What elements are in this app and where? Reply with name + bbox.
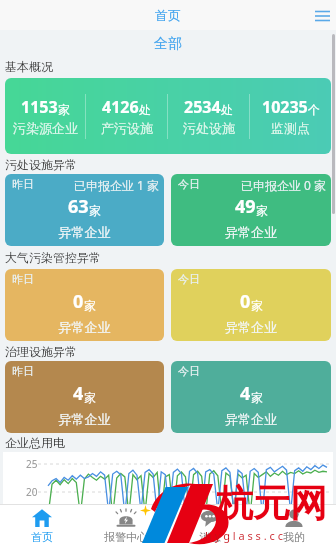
staticText: 企业总用电 (5, 435, 65, 450)
staticText: 首页 (155, 7, 181, 23)
button[interactable]: 昨日 (5, 269, 164, 341)
staticText: 杭元网 (216, 480, 327, 527)
button[interactable]: 今日 (171, 361, 331, 433)
button[interactable]: 报警中心 (84, 505, 168, 548)
staticText: 0 (73, 289, 84, 314)
staticText: 10235 (262, 96, 308, 118)
staticText: 25 (26, 457, 38, 471)
staticText: 1153 (21, 96, 58, 118)
staticText: 家 (84, 298, 96, 313)
staticText: 49 (235, 194, 256, 219)
staticText: 异常企业 (5, 411, 164, 427)
staticText: 异常企业 (171, 411, 331, 427)
button[interactable]: 消息 (168, 505, 252, 548)
staticText: 昨日 (12, 177, 34, 191)
staticText: 治理设施异常 (5, 344, 77, 359)
button[interactable]: 我的 (252, 505, 336, 548)
staticText: h y g l a s s . c c (205, 528, 283, 543)
staticText: 首页 (31, 530, 53, 544)
button[interactable]: 1153 (5, 78, 331, 154)
staticText: 家 (251, 390, 263, 405)
staticText: 昨日 (12, 364, 34, 378)
staticText: 异常企业 (5, 319, 164, 335)
staticText: 异常企业 (171, 224, 331, 240)
staticText: 今日 (178, 177, 200, 191)
button[interactable]: 今日 (171, 269, 331, 341)
staticText: 污染源企业 (13, 120, 78, 136)
staticText: 已申报企业 0 家 (241, 177, 327, 193)
staticText: 63 (68, 194, 89, 219)
staticText: 家 (84, 390, 96, 405)
staticText: 4 (240, 381, 251, 406)
staticText: 污处设施异常 (5, 157, 77, 172)
staticText: 消息 (199, 530, 221, 544)
staticText: 20 (26, 485, 38, 499)
staticText: 家 (58, 102, 70, 117)
staticText: 已申报企业 1 家 (74, 177, 160, 193)
staticText: 报警中心 (104, 530, 148, 544)
staticText: 4 (73, 381, 84, 406)
staticText: 处 (139, 102, 151, 117)
staticText: 0 (240, 289, 251, 314)
staticText: 处 (221, 102, 233, 117)
staticText: 今日 (178, 272, 200, 286)
button[interactable]: 昨日 (5, 361, 164, 433)
staticText: 个 (308, 102, 320, 117)
button[interactable]: Menu (308, 0, 336, 30)
staticText: 家 (256, 203, 268, 218)
staticText: 我的 (283, 530, 305, 544)
staticText: 全部 (154, 35, 182, 53)
staticText: 家 (89, 203, 101, 218)
staticText: 污处设施 (183, 120, 235, 136)
staticText: 昨日 (12, 272, 34, 286)
staticText: 今日 (178, 364, 200, 378)
staticText: 4126 (102, 96, 139, 118)
staticText: 基本概况 (5, 59, 53, 74)
staticText: 异常企业 (171, 319, 331, 335)
staticText: 2534 (184, 96, 221, 118)
staticText: 大气污染管控异常 (5, 250, 101, 265)
staticText: 异常企业 (5, 224, 164, 240)
button[interactable]: 首页 (0, 505, 84, 548)
button[interactable]: 昨日 (5, 174, 164, 246)
button[interactable]: 今日 (171, 174, 331, 246)
staticText: 监测点 (271, 120, 310, 136)
staticText: 产污设施 (101, 120, 153, 136)
staticText: 家 (251, 298, 263, 313)
